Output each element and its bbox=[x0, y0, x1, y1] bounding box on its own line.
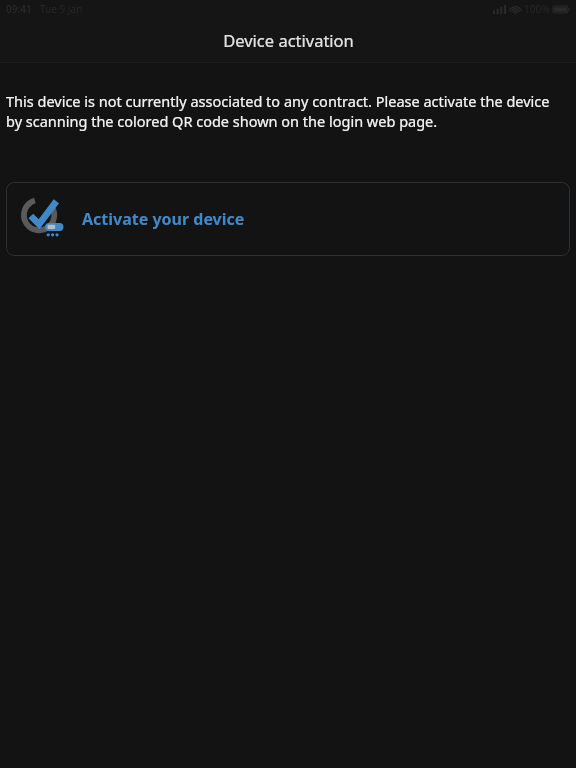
staticText: Device activation bbox=[223, 29, 354, 51]
staticText: Tue 9 Jan bbox=[40, 2, 83, 16]
staticText: This device is not currently associated … bbox=[6, 91, 556, 132]
other: Activate your device bbox=[20, 196, 66, 242]
staticText: 100% bbox=[524, 2, 550, 16]
staticText: 09:41 bbox=[6, 2, 32, 16]
button[interactable]: Activate your device bbox=[6, 182, 570, 256]
staticText: Activate your device bbox=[82, 208, 245, 230]
